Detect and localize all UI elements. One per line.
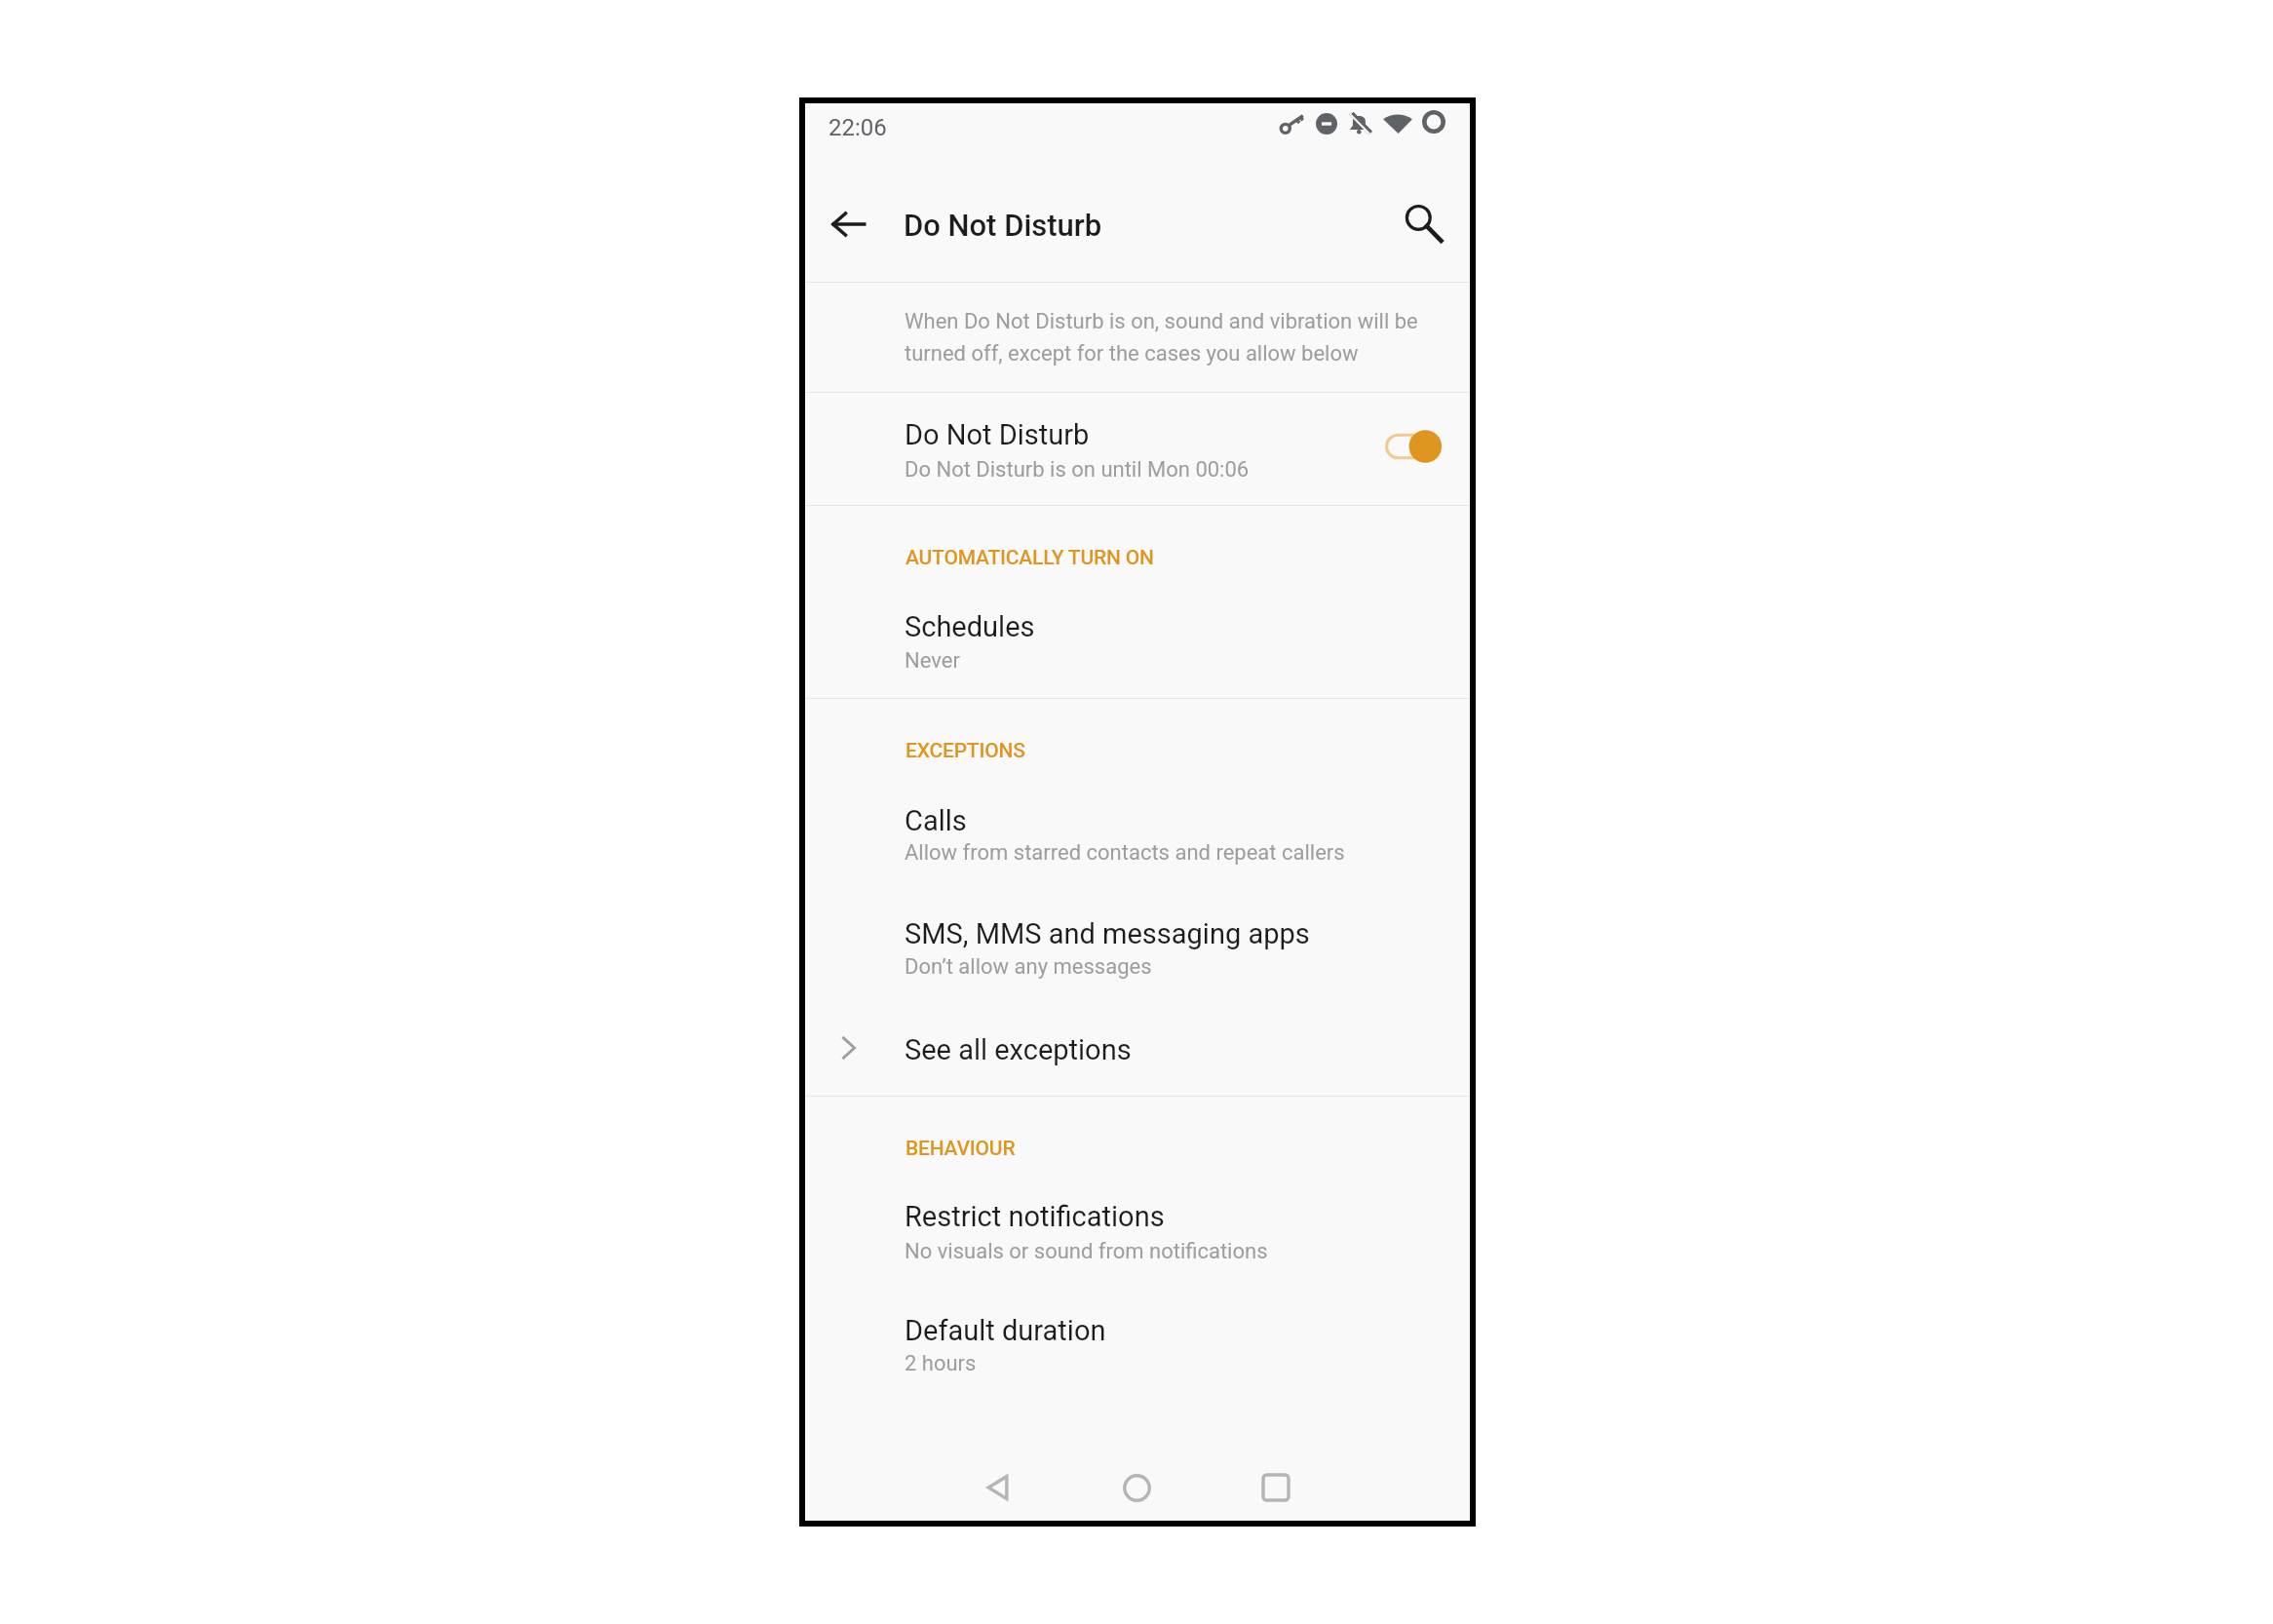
button[interactable]: Recents [1232, 1444, 1320, 1531]
button[interactable]: Home [1093, 1444, 1180, 1531]
button[interactable]: See all exceptions [805, 1003, 1470, 1097]
button[interactable]: Back [815, 189, 885, 259]
staticText: Default duration [905, 1314, 1106, 1347]
staticText: See all exceptions [905, 1033, 1132, 1066]
staticText: When Do Not Disturb is on, sound and vib… [905, 309, 1418, 366]
staticText: Do Not Disturb [905, 418, 1090, 451]
button[interactable]: Do Not Disturb [805, 392, 1470, 505]
staticText: AUTOMATICALLY TURN ON [905, 546, 1154, 570]
button[interactable]: Restrict notifications [805, 1175, 1470, 1277]
staticText: Do Not Disturb is on until Mon 00:06 [905, 457, 1250, 483]
staticText: Do Not Disturb [904, 208, 1102, 243]
button[interactable]: Schedules [805, 585, 1470, 687]
staticText: Calls [905, 804, 967, 837]
staticText: 2 hours [905, 1351, 977, 1376]
staticText: 22:06 [828, 114, 887, 141]
staticText: Never [905, 648, 960, 674]
staticText: Schedules [905, 610, 1035, 643]
button[interactable]: Do Not Disturb toggle [1374, 421, 1452, 474]
button[interactable]: SMS, MMS and messaging apps [805, 892, 1470, 994]
button[interactable]: Calls [805, 780, 1470, 882]
button[interactable]: Back [955, 1444, 1043, 1531]
staticText: No visuals or sound from notifications [905, 1239, 1268, 1264]
button[interactable]: Default duration [805, 1289, 1470, 1392]
staticText: Allow from starred contacts and repeat c… [905, 840, 1345, 866]
staticText: SMS, MMS and messaging apps [905, 917, 1310, 950]
staticText: Restrict notifications [905, 1200, 1165, 1233]
button[interactable]: Search [1391, 187, 1461, 257]
staticText: BEHAVIOUR [905, 1137, 1016, 1161]
staticText: EXCEPTIONS [905, 739, 1025, 763]
staticText: Don’t allow any messages [905, 954, 1152, 980]
